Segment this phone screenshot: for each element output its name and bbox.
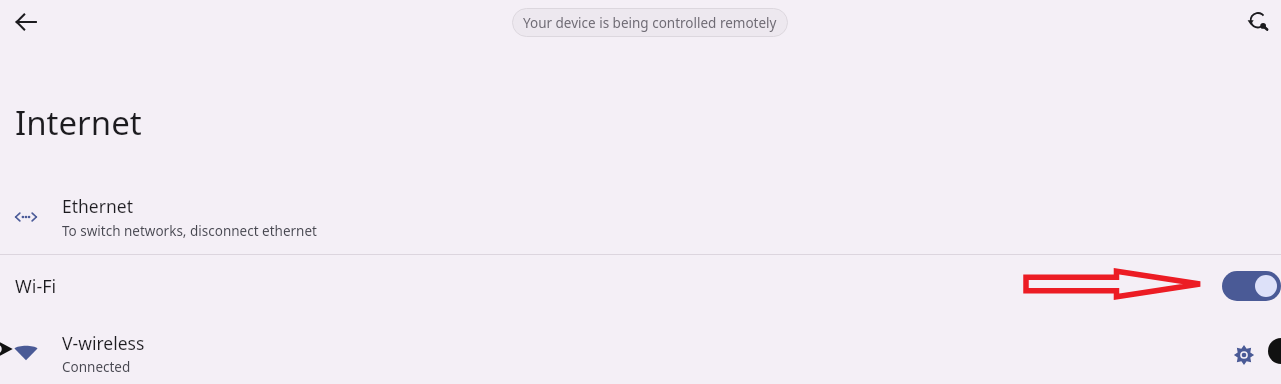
button[interactable]: Wi-Fi on bbox=[1222, 271, 1281, 301]
staticText: Your device is being controlled remotely bbox=[523, 14, 777, 32]
staticText: Ethernet bbox=[62, 194, 133, 218]
button[interactable]: Your device is being controlled remotely bbox=[512, 8, 788, 37]
staticText: Wi-Fi bbox=[15, 274, 57, 299]
button[interactable]: Network settings bbox=[1228, 339, 1260, 371]
staticText: V-wireless bbox=[62, 331, 145, 355]
button[interactable]: Wi-Fi bbox=[0, 256, 1281, 316]
button[interactable]: Fix connectivity bbox=[1240, 3, 1278, 41]
staticText: Connected bbox=[62, 358, 131, 376]
button[interactable]: Back bbox=[8, 4, 44, 40]
button[interactable]: Ethernet bbox=[0, 180, 1281, 253]
button[interactable]: V-wireless bbox=[0, 322, 1281, 384]
staticText: To switch networks, disconnect ethernet bbox=[62, 222, 317, 240]
staticText: Internet bbox=[15, 100, 142, 145]
